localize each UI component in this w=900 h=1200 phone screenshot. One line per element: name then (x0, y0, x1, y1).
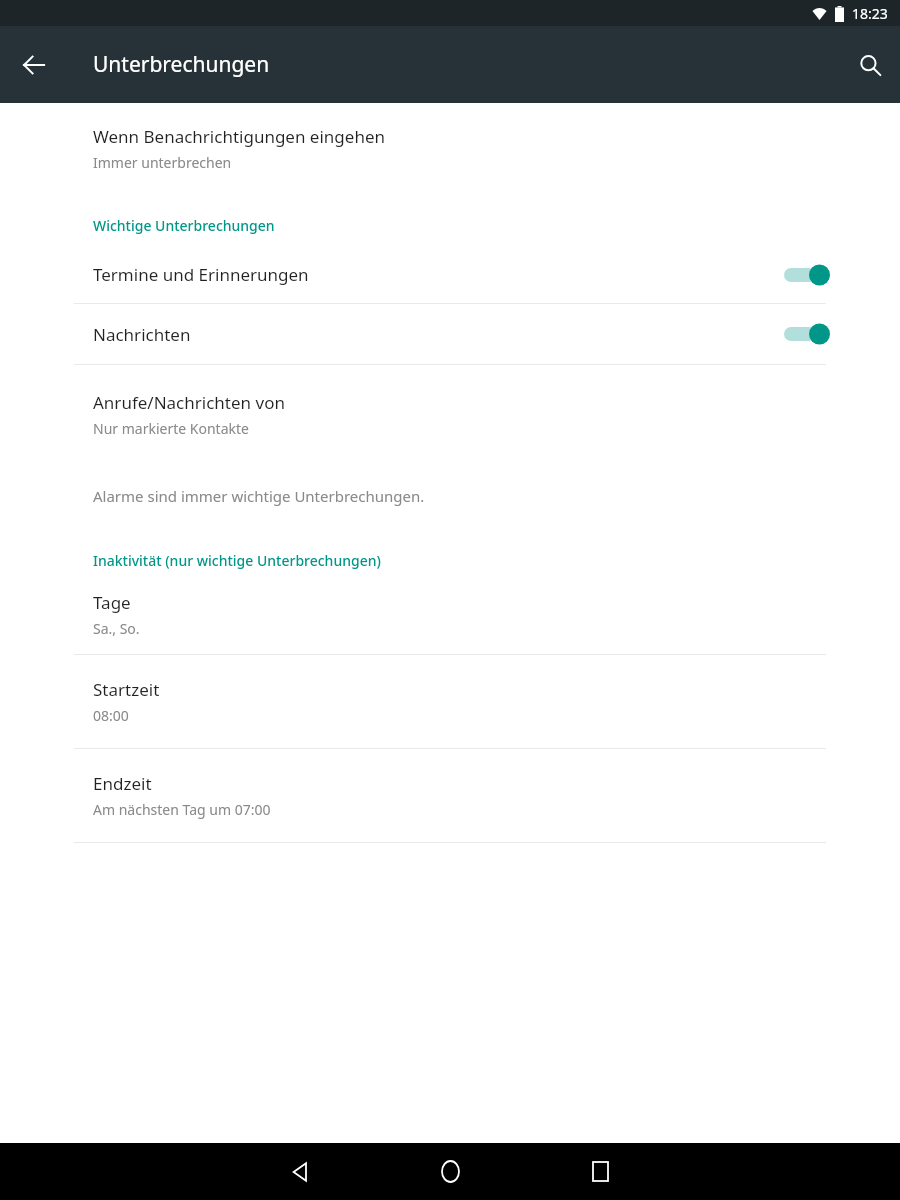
staticText: Inaktivität (nur wichtige Unterbrechunge… (93, 551, 381, 570)
staticText: 18:23 (852, 4, 888, 23)
staticText: Termine und Erinnerungen (93, 263, 784, 286)
staticText: Startzeit (93, 678, 160, 701)
button[interactable]: Startbildschirm (375, 1143, 525, 1200)
staticText: Alarme sind immer wichtige Unterbrechung… (93, 486, 425, 506)
button[interactable]: Tage (0, 581, 900, 654)
button[interactable]: Termine und Erinnerungen (0, 246, 900, 303)
button[interactable]: Zurück (10, 41, 58, 89)
button[interactable]: Anrufe/Nachrichten von (0, 365, 900, 448)
staticText: Tage (93, 591, 131, 614)
button[interactable]: Wenn Benachrichtigungen eingehen (0, 109, 900, 182)
staticText: Anrufe/Nachrichten von (93, 391, 285, 414)
button[interactable]: Zurück (225, 1143, 375, 1200)
staticText: 08:00 (93, 706, 129, 725)
staticText: Wichtige Unterbrechungen (93, 216, 275, 235)
button[interactable]: Endzeit (0, 749, 900, 842)
button[interactable]: Startzeit (0, 655, 900, 748)
button[interactable]: Übersicht (525, 1143, 675, 1200)
staticText: Unterbrechungen (93, 50, 270, 79)
staticText: Am nächsten Tag um 07:00 (93, 800, 271, 819)
staticText: Endzeit (93, 772, 152, 795)
staticText: Sa., So. (93, 619, 140, 638)
button[interactable]: Suchen (846, 41, 894, 89)
staticText: Nachrichten (93, 323, 784, 346)
staticText: Immer unterbrechen (93, 153, 232, 172)
staticText: Wenn Benachrichtigungen eingehen (93, 125, 385, 148)
staticText: Nur markierte Kontakte (93, 419, 249, 438)
button[interactable]: Nachrichten (0, 304, 900, 364)
